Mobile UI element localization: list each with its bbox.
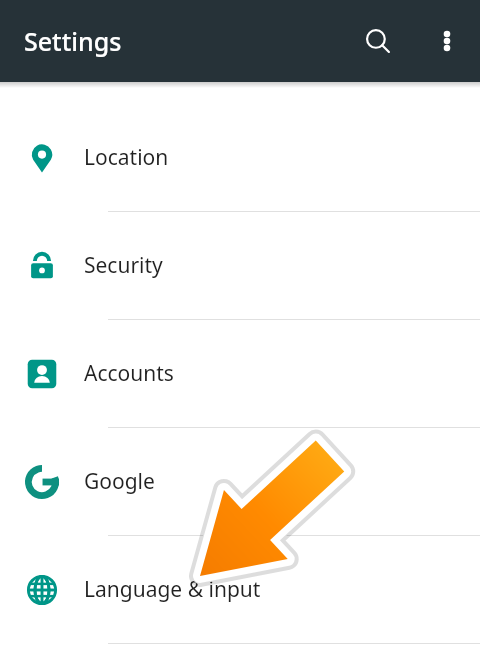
staticText: Accounts [84,359,174,388]
button[interactable]: Location [0,104,480,212]
staticText: Settings [24,24,122,58]
button[interactable]: More options [423,17,471,65]
button[interactable]: Google [0,428,480,536]
button[interactable]: Search [354,17,402,65]
staticText: Google [84,467,155,496]
button[interactable]: Language & input [0,536,480,644]
staticText: Security [84,251,163,280]
staticText: Location [84,143,169,172]
staticText: Language & input [84,575,261,604]
button[interactable]: Accounts [0,320,480,428]
button[interactable]: Security [0,212,480,320]
